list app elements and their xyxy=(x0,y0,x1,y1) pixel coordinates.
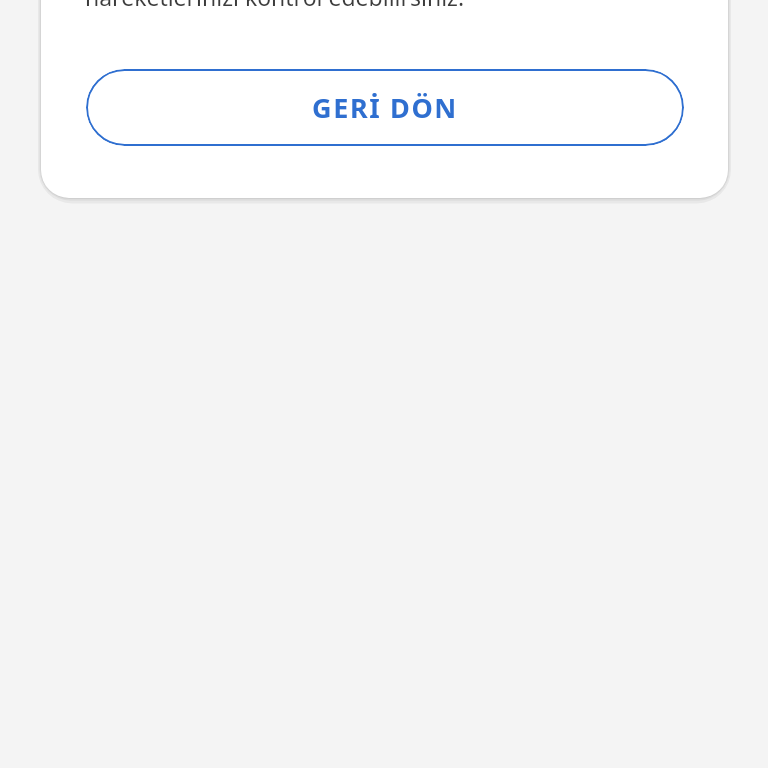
button[interactable]: GERİ DÖN xyxy=(86,69,684,146)
staticText: GERİ DÖN xyxy=(312,89,458,126)
staticText: İşleminiz başarıyla tamamlandı. Detaylar… xyxy=(85,0,684,12)
